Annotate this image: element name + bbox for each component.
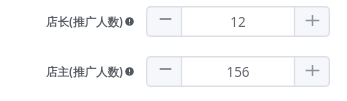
button[interactable]: 减少 — [146, 56, 181, 87]
button[interactable]: 提示 — [124, 16, 135, 27]
staticText: 12 — [230, 13, 246, 31]
button[interactable]: 增加 — [295, 56, 330, 87]
staticText: 店主(推广人数) — [46, 64, 123, 80]
staticText: 店长(推广人数) — [46, 14, 123, 30]
button[interactable]: 增加 — [295, 6, 330, 37]
button[interactable]: 提示 — [124, 66, 135, 77]
button[interactable]: 减少 — [146, 6, 181, 37]
staticText: 156 — [226, 63, 250, 81]
